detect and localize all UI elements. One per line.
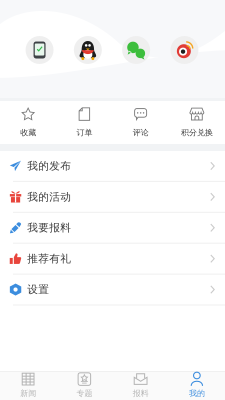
button[interactable]: 报料 [112,371,169,400]
button[interactable]: 我的活动 [0,182,225,212]
button[interactable]: 设置 [0,275,225,304]
staticText: 收藏 [20,128,36,137]
button[interactable]: 推荐有礼 [0,244,225,274]
button[interactable]: 我的发布 [0,151,225,181]
staticText: 新闻 [20,388,36,398]
staticText: 订单 [76,128,92,137]
button[interactable]: 收藏 [0,101,56,144]
button[interactable]: 订单 [56,101,112,144]
staticText: 我的发布 [27,159,71,172]
button[interactable]: 积分兑换 [169,101,225,144]
button[interactable]: 短信分享 [25,36,53,64]
staticText: 积分兑换 [181,128,213,137]
button[interactable]: 新闻 [0,371,56,400]
staticText: 我的 [189,388,205,398]
button[interactable]: 专题 [56,371,112,400]
staticText: 报料 [133,388,149,398]
staticText: 评论 [133,128,149,137]
button[interactable]: QQ 分享 [74,36,102,64]
button[interactable]: 微信分享 [122,36,150,64]
staticText: 我要报料 [27,221,71,234]
button[interactable]: 评论 [112,101,169,144]
button[interactable]: 我要报料 [0,213,225,243]
button[interactable]: 微博分享 [170,36,198,64]
button[interactable]: 我的 [169,371,225,400]
staticText: 专题 [76,388,92,398]
staticText: 我的活动 [27,190,71,203]
staticText: 设置 [27,283,49,296]
staticText: 推荐有礼 [27,252,71,265]
